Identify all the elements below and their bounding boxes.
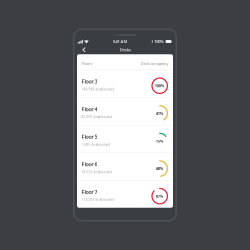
staticText: Floors xyxy=(81,61,92,66)
staticText: 100% xyxy=(155,83,165,88)
button[interactable]: Floor 7 xyxy=(77,181,173,208)
staticText: Floor 7 xyxy=(81,188,97,195)
staticText: 87% xyxy=(156,193,164,199)
staticText: 13/85 desks booked xyxy=(81,143,110,146)
staticText: Desks xyxy=(120,47,131,52)
button[interactable]: Floor 6 xyxy=(77,153,173,180)
staticText: 48% xyxy=(156,166,164,171)
staticText: Floor 3 xyxy=(81,78,97,85)
button[interactable]: Back xyxy=(80,46,87,54)
staticText: 82/200 desks booked xyxy=(81,115,112,119)
staticText: Floor 6 xyxy=(81,161,97,168)
staticText: 9:41 AM xyxy=(112,39,127,44)
staticText: 188/188 desks booked xyxy=(81,88,114,91)
staticText: 100% xyxy=(154,39,164,44)
button[interactable]: Floor 3 xyxy=(77,70,173,97)
staticText: 78/150 desks booked xyxy=(81,170,112,174)
staticText: Floor 5 xyxy=(81,133,97,140)
staticText: 174/200 desks booked xyxy=(81,198,114,201)
staticText: Desk occupancy xyxy=(141,61,169,66)
staticText: 41% xyxy=(156,111,164,116)
staticText: Floor 4 xyxy=(81,105,97,113)
button[interactable]: Floor 5 xyxy=(77,125,173,152)
button[interactable]: Floor 4 xyxy=(77,98,173,125)
staticText: 15% xyxy=(156,138,164,144)
